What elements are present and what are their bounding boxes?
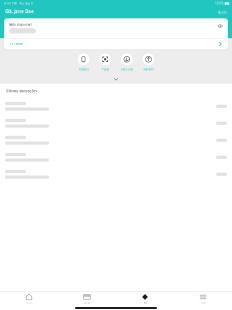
staticText: Recarga	[79, 68, 88, 71]
button[interactable]: Transferir	[138, 52, 159, 72]
button[interactable]: Início	[0, 292, 58, 306]
staticText: Transferir	[143, 68, 154, 71]
button[interactable]: Menu	[174, 292, 232, 306]
button[interactable]: Pagar	[94, 52, 116, 72]
staticText: Ajuda	[218, 11, 226, 14]
staticText: Ver extrato	[9, 42, 23, 46]
button[interactable]: Cartões	[58, 292, 116, 306]
button[interactable]: Recolher	[114, 77, 118, 81]
staticText: Início	[26, 301, 32, 304]
button[interactable]: Mostrar saldo	[217, 23, 223, 29]
button[interactable]: Pix	[116, 292, 174, 306]
button[interactable]: Ver extrato	[4, 39, 228, 49]
staticText: Pix	[143, 301, 146, 304]
staticText: 100%	[215, 2, 223, 5]
staticText: Cartões	[83, 301, 90, 304]
staticText: 4:00 PM Thu Sep 8	[4, 2, 33, 5]
button[interactable]: Ajuda	[217, 11, 227, 14]
staticText: Depositar	[121, 68, 133, 71]
staticText: Saldo disponível	[9, 23, 32, 26]
staticText: Menu	[200, 301, 205, 304]
staticText: Pagar	[102, 68, 109, 71]
staticText: Olá, Jane Doe	[5, 9, 34, 14]
staticText: Últimas transações	[5, 88, 37, 93]
button[interactable]: Recarga	[73, 52, 94, 72]
button[interactable]: Depositar	[116, 52, 138, 72]
